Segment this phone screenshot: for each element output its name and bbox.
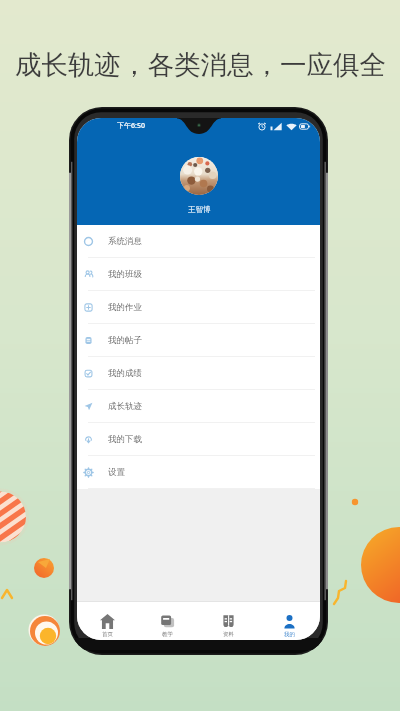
staticText: 我的下载 (108, 434, 142, 445)
button[interactable]: 我的成绩 (77, 357, 320, 390)
staticText: 系统消息 (108, 236, 142, 247)
staticText: 我的作业 (108, 302, 142, 313)
button[interactable]: 成长轨迹 (77, 390, 320, 423)
staticText: 下午6:50 (117, 121, 145, 131)
staticText: 设置 (108, 467, 125, 478)
button[interactable]: 设置 (77, 456, 320, 489)
button[interactable]: 系统消息 (77, 225, 320, 258)
button[interactable]: 我的帖子 (77, 324, 320, 357)
staticText: 教学 (162, 631, 173, 638)
button[interactable]: 首页 (77, 602, 137, 640)
staticText: 我的 (284, 631, 295, 638)
button[interactable]: 我的 (259, 602, 320, 640)
staticText: 成长轨迹 (108, 401, 142, 412)
button[interactable]: 我的班级 (77, 258, 320, 291)
staticText: 王智博 (188, 205, 211, 214)
staticText: 我的帖子 (108, 335, 142, 346)
button[interactable]: 我的作业 (77, 291, 320, 324)
button[interactable]: 教学 (137, 602, 198, 640)
staticText: 首页 (102, 631, 113, 638)
staticText: 资料 (223, 631, 234, 638)
staticText: 我的成绩 (108, 368, 142, 379)
staticText: 我的班级 (108, 269, 142, 280)
staticText: 成长轨迹，各类消息，一应俱全 (15, 48, 386, 81)
button[interactable]: 资料 (198, 602, 259, 640)
button[interactable]: 我的下载 (77, 423, 320, 456)
